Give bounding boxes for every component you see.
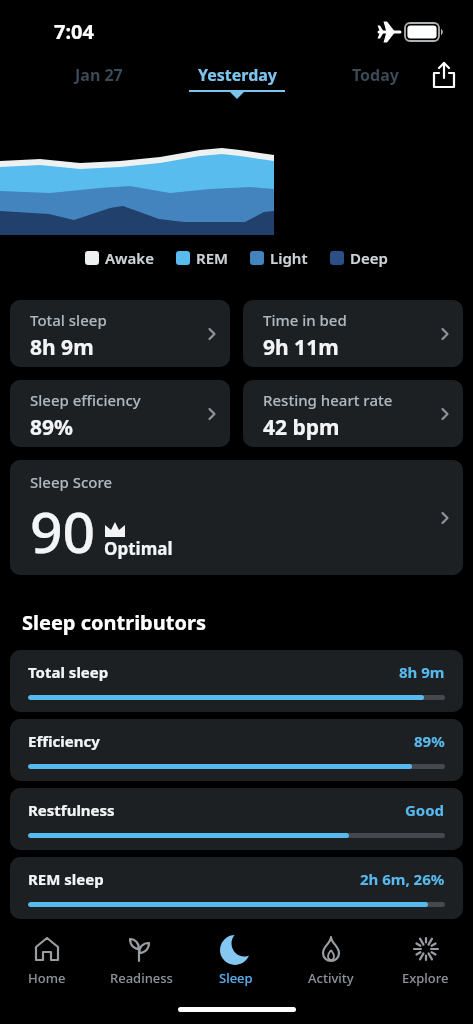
button[interactable]: REM sleep xyxy=(10,857,463,919)
staticText: Good xyxy=(405,800,445,820)
staticText: Readiness xyxy=(110,969,173,987)
staticText: Awake xyxy=(105,248,154,268)
staticText: Activity xyxy=(308,969,354,987)
button[interactable]: Resting heart rate xyxy=(243,380,463,447)
staticText: Sleep efficiency xyxy=(30,390,141,410)
button[interactable]: Total sleep xyxy=(10,300,230,367)
staticText: Explore xyxy=(402,969,449,987)
button[interactable]: Time in bed xyxy=(243,300,463,367)
button[interactable]: Readiness xyxy=(94,933,188,987)
staticText: Sleep xyxy=(219,969,253,987)
staticText: 8h 9m xyxy=(399,662,445,682)
staticText: 42 bpm xyxy=(263,413,340,442)
staticText: Optimal xyxy=(104,537,173,560)
staticText: 90 xyxy=(30,492,96,570)
button[interactable]: Yesterday xyxy=(198,64,277,86)
staticText: Total sleep xyxy=(30,310,107,330)
staticText: Time in bed xyxy=(263,310,347,330)
button[interactable]: Restfulness xyxy=(10,788,463,850)
button[interactable]: Sleep Score xyxy=(10,460,463,575)
staticText: Deep xyxy=(350,248,388,268)
staticText: REM sleep xyxy=(28,869,104,889)
button[interactable]: Sleep xyxy=(188,933,283,987)
staticText: Sleep contributors xyxy=(22,609,206,636)
staticText: Restfulness xyxy=(28,800,115,820)
staticText: Total sleep xyxy=(28,662,109,682)
staticText: 89% xyxy=(414,731,445,751)
staticText: Sleep Score xyxy=(30,472,113,492)
staticText: 8h 9m xyxy=(30,333,94,362)
staticText: Light xyxy=(270,248,308,268)
staticText: 2h 6m, 26% xyxy=(360,869,445,889)
staticText: Home xyxy=(28,969,66,987)
button[interactable] xyxy=(429,60,459,90)
button[interactable]: Efficiency xyxy=(10,719,463,781)
staticText: Resting heart rate xyxy=(263,390,393,410)
staticText: 7:04 xyxy=(54,18,94,45)
button[interactable]: Total sleep xyxy=(10,650,463,712)
staticText: 9h 11m xyxy=(263,333,339,362)
staticText: 89% xyxy=(30,413,73,442)
button[interactable]: Home xyxy=(0,933,94,987)
button[interactable]: Explore xyxy=(378,933,473,987)
button[interactable]: Sleep efficiency xyxy=(10,380,230,447)
button[interactable]: Jan 27 xyxy=(75,64,123,86)
button[interactable]: Today xyxy=(352,64,399,86)
staticText: Efficiency xyxy=(28,731,100,751)
button[interactable]: Activity xyxy=(283,933,378,987)
staticText: REM xyxy=(196,248,228,268)
